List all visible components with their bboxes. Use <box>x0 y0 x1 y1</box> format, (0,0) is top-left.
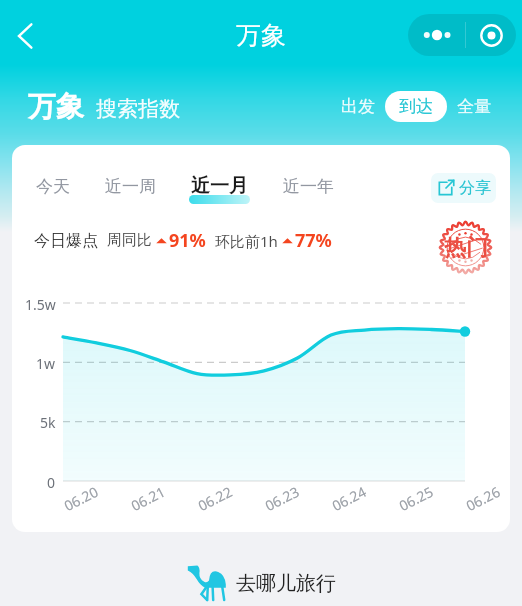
staticText: 今日爆点 <box>34 231 98 251</box>
staticText: 到达 <box>399 96 433 117</box>
staticText: 热门 <box>444 234 488 262</box>
staticText: 06.21 <box>128 482 168 515</box>
staticText: 06.26 <box>463 482 503 515</box>
button[interactable]: 到达 <box>385 91 447 122</box>
button[interactable]: 近一年 <box>280 171 337 205</box>
staticText: 06.23 <box>262 482 302 515</box>
staticText: 万象 <box>236 20 286 51</box>
button[interactable]: 分享 <box>431 173 496 203</box>
staticText: 搜索指数 <box>96 96 180 122</box>
staticText: 今天 <box>36 176 70 197</box>
staticText: 77% <box>295 228 332 253</box>
staticText: 近一月 <box>191 174 248 198</box>
button[interactable]: Close mini program <box>466 14 516 56</box>
staticText: 近一周 <box>105 176 156 197</box>
staticText: 1.5w <box>25 295 56 314</box>
staticText: 周同比 <box>107 231 152 250</box>
staticText: 0 <box>47 473 56 492</box>
staticText: 06.24 <box>329 482 369 515</box>
staticText: 环比前1h <box>215 231 278 251</box>
button[interactable]: Back <box>2 13 48 59</box>
staticText: 出发 <box>341 96 375 117</box>
staticText: 去哪儿旅行 <box>236 571 336 596</box>
staticText: 91% <box>169 228 206 253</box>
staticText: 全量 <box>457 96 491 117</box>
staticText: 分享 <box>459 178 491 198</box>
button[interactable]: More options <box>408 14 465 56</box>
staticText: 1w <box>36 354 56 373</box>
button[interactable]: 全量 <box>454 91 494 122</box>
staticText: 万象 <box>28 89 84 124</box>
button[interactable]: 近一月 <box>189 171 250 205</box>
button[interactable]: 近一周 <box>102 171 159 205</box>
staticText: 06.20 <box>61 482 101 515</box>
button[interactable]: 今天 <box>34 171 72 205</box>
staticText: 5k <box>40 413 56 432</box>
staticText: 近一年 <box>283 176 334 197</box>
button[interactable]: 出发 <box>338 91 378 122</box>
staticText: 06.22 <box>195 482 235 515</box>
staticText: 06.25 <box>396 482 436 515</box>
